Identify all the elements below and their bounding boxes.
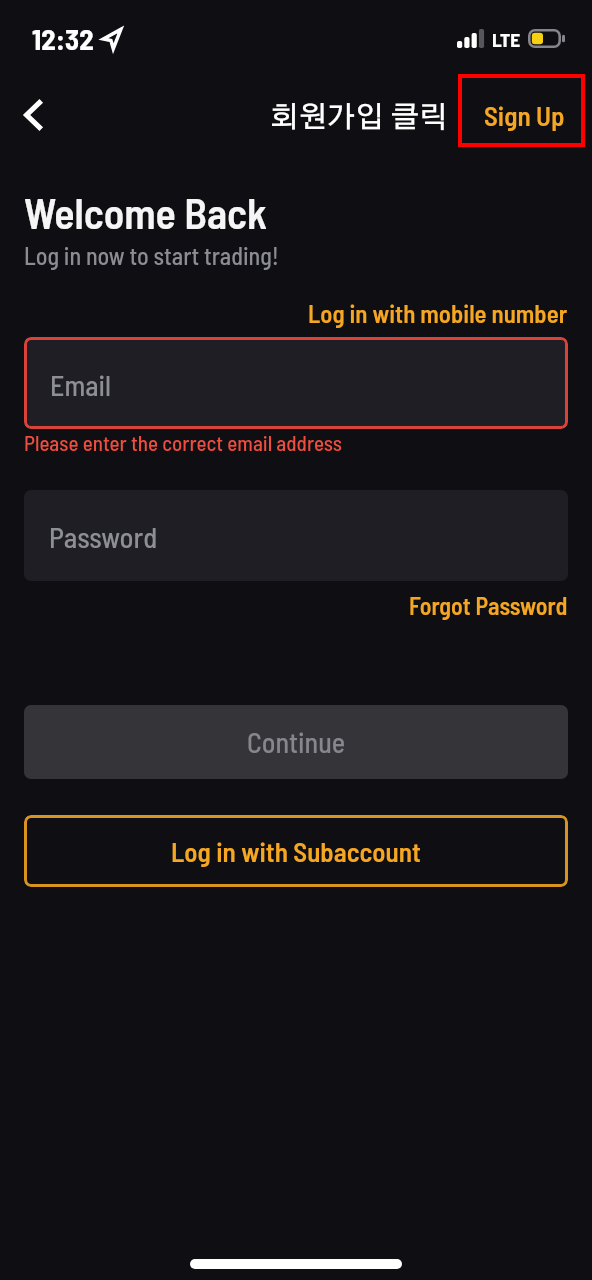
button[interactable]: Password bbox=[24, 490, 568, 581]
staticText: Welcome Back bbox=[24, 187, 268, 237]
staticText: 회원가입 클릭 bbox=[270, 104, 448, 133]
staticText: Log in now to start trading! bbox=[24, 241, 279, 270]
staticText: Please enter the correct email address bbox=[24, 430, 342, 455]
button[interactable]: Forgot Password bbox=[409, 591, 568, 620]
staticText: Sign Up bbox=[484, 99, 565, 131]
button[interactable]: Sign Up bbox=[470, 78, 578, 151]
button[interactable]: Log in with Subaccount bbox=[24, 815, 568, 887]
button[interactable]: Log in with mobile number bbox=[308, 298, 568, 328]
staticText: Password bbox=[49, 519, 158, 553]
staticText: Continue bbox=[247, 725, 346, 759]
staticText: Email bbox=[50, 368, 111, 402]
staticText: LTE bbox=[492, 28, 521, 51]
staticText: 12:32 bbox=[32, 21, 94, 56]
button[interactable]: Continue bbox=[24, 705, 568, 779]
button[interactable]: Back bbox=[0, 82, 66, 148]
button[interactable]: Email bbox=[24, 337, 568, 429]
staticText: Log in with Subaccount bbox=[171, 835, 421, 867]
